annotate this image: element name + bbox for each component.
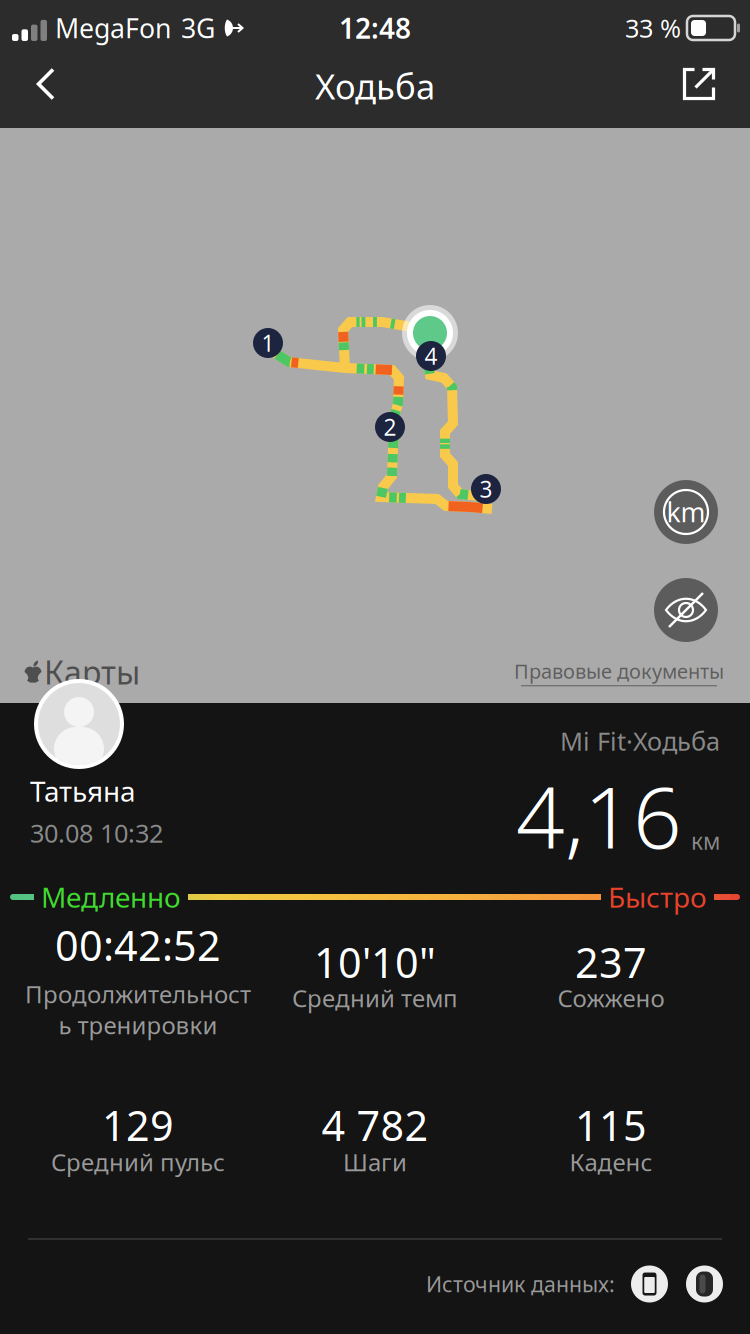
staticText: Медленно (41, 878, 181, 916)
staticText: Ходьба (315, 63, 435, 109)
staticText: Продолжительност (25, 978, 251, 1010)
staticText: Источник данных: (426, 1270, 615, 1298)
staticText: 4 (424, 341, 437, 371)
button[interactable]: Band data source (686, 1265, 723, 1302)
staticText: 10'10" (314, 935, 436, 989)
staticText: Каденс (569, 1146, 652, 1178)
staticText: Шаги (343, 1146, 407, 1178)
button[interactable]: Правовые документы (514, 658, 724, 686)
staticText: 115 (575, 1098, 647, 1152)
staticText: Mi Fit·Ходьба (560, 724, 720, 758)
staticText: Сожжено (557, 982, 664, 1014)
staticText: 30.08 10:32 (30, 816, 163, 850)
button[interactable]: Hide route (654, 578, 718, 642)
staticText: 4,16 (516, 759, 682, 872)
staticText: 4 782 (321, 1098, 428, 1152)
staticText: 12:48 (339, 9, 411, 47)
staticText: 129 (102, 1098, 174, 1152)
staticText: Средний пульс (51, 1146, 225, 1178)
button[interactable]: Share (667, 56, 731, 112)
staticText: 33 % (625, 11, 681, 45)
staticText: 1 (261, 328, 274, 358)
staticText: 237 (575, 935, 647, 989)
staticText: Средний темп (292, 982, 458, 1014)
staticText: km (666, 494, 705, 530)
staticText: км (691, 826, 720, 856)
staticText: 3G (181, 10, 215, 46)
staticText: ь тренировки (58, 1009, 217, 1041)
button[interactable]: Back (14, 56, 78, 112)
staticText: Татьяна (30, 772, 136, 810)
staticText: MegaFon (55, 10, 171, 46)
staticText: 2 (383, 412, 396, 442)
staticText: 00:42:52 (55, 918, 221, 972)
staticText: 3 (479, 474, 492, 504)
button[interactable]: Phone data source (631, 1265, 668, 1302)
staticText: Правовые документы (514, 658, 724, 684)
button[interactable]: Distance units (654, 480, 718, 544)
staticText: Карты (44, 651, 140, 693)
staticText: Быстро (608, 878, 707, 916)
